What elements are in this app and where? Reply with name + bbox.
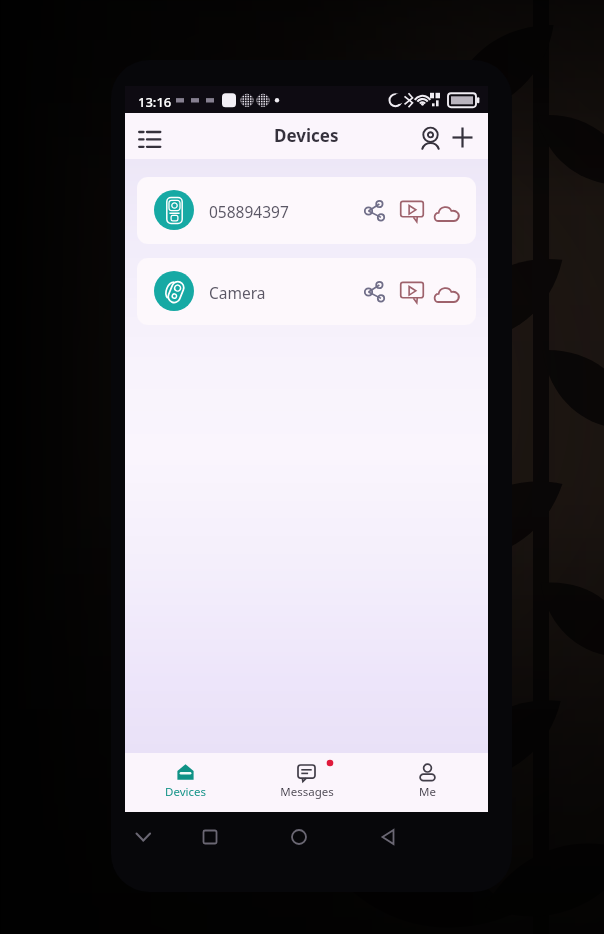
staticText: Camera	[209, 282, 266, 303]
button[interactable]: Share	[357, 275, 390, 308]
staticText: Devices	[165, 784, 206, 800]
button[interactable]: Messages	[246, 753, 367, 812]
button[interactable]: Playback	[395, 275, 428, 308]
button[interactable]: Recent apps	[193, 820, 227, 854]
staticText: Me	[419, 784, 436, 800]
button[interactable]: Account	[414, 120, 447, 153]
button[interactable]: Share	[357, 194, 390, 227]
staticText: Devices	[274, 124, 339, 147]
staticText: 13:16	[138, 93, 172, 111]
button[interactable]: Menu	[133, 119, 167, 153]
button[interactable]: Home	[282, 820, 316, 854]
button[interactable]: Hide	[126, 820, 160, 854]
button[interactable]: Cloud storage	[430, 194, 463, 227]
staticText: 058894397	[209, 201, 289, 222]
button[interactable]: 058894397	[137, 177, 476, 244]
button[interactable]: Back	[371, 820, 405, 854]
button[interactable]: Playback	[395, 194, 428, 227]
staticText: Messages	[280, 784, 334, 800]
button[interactable]: Devices	[125, 753, 246, 812]
button[interactable]: Cloud storage	[430, 275, 463, 308]
button[interactable]: Camera	[137, 258, 476, 325]
button[interactable]: Add device	[446, 120, 479, 153]
button[interactable]: Me	[367, 753, 488, 812]
